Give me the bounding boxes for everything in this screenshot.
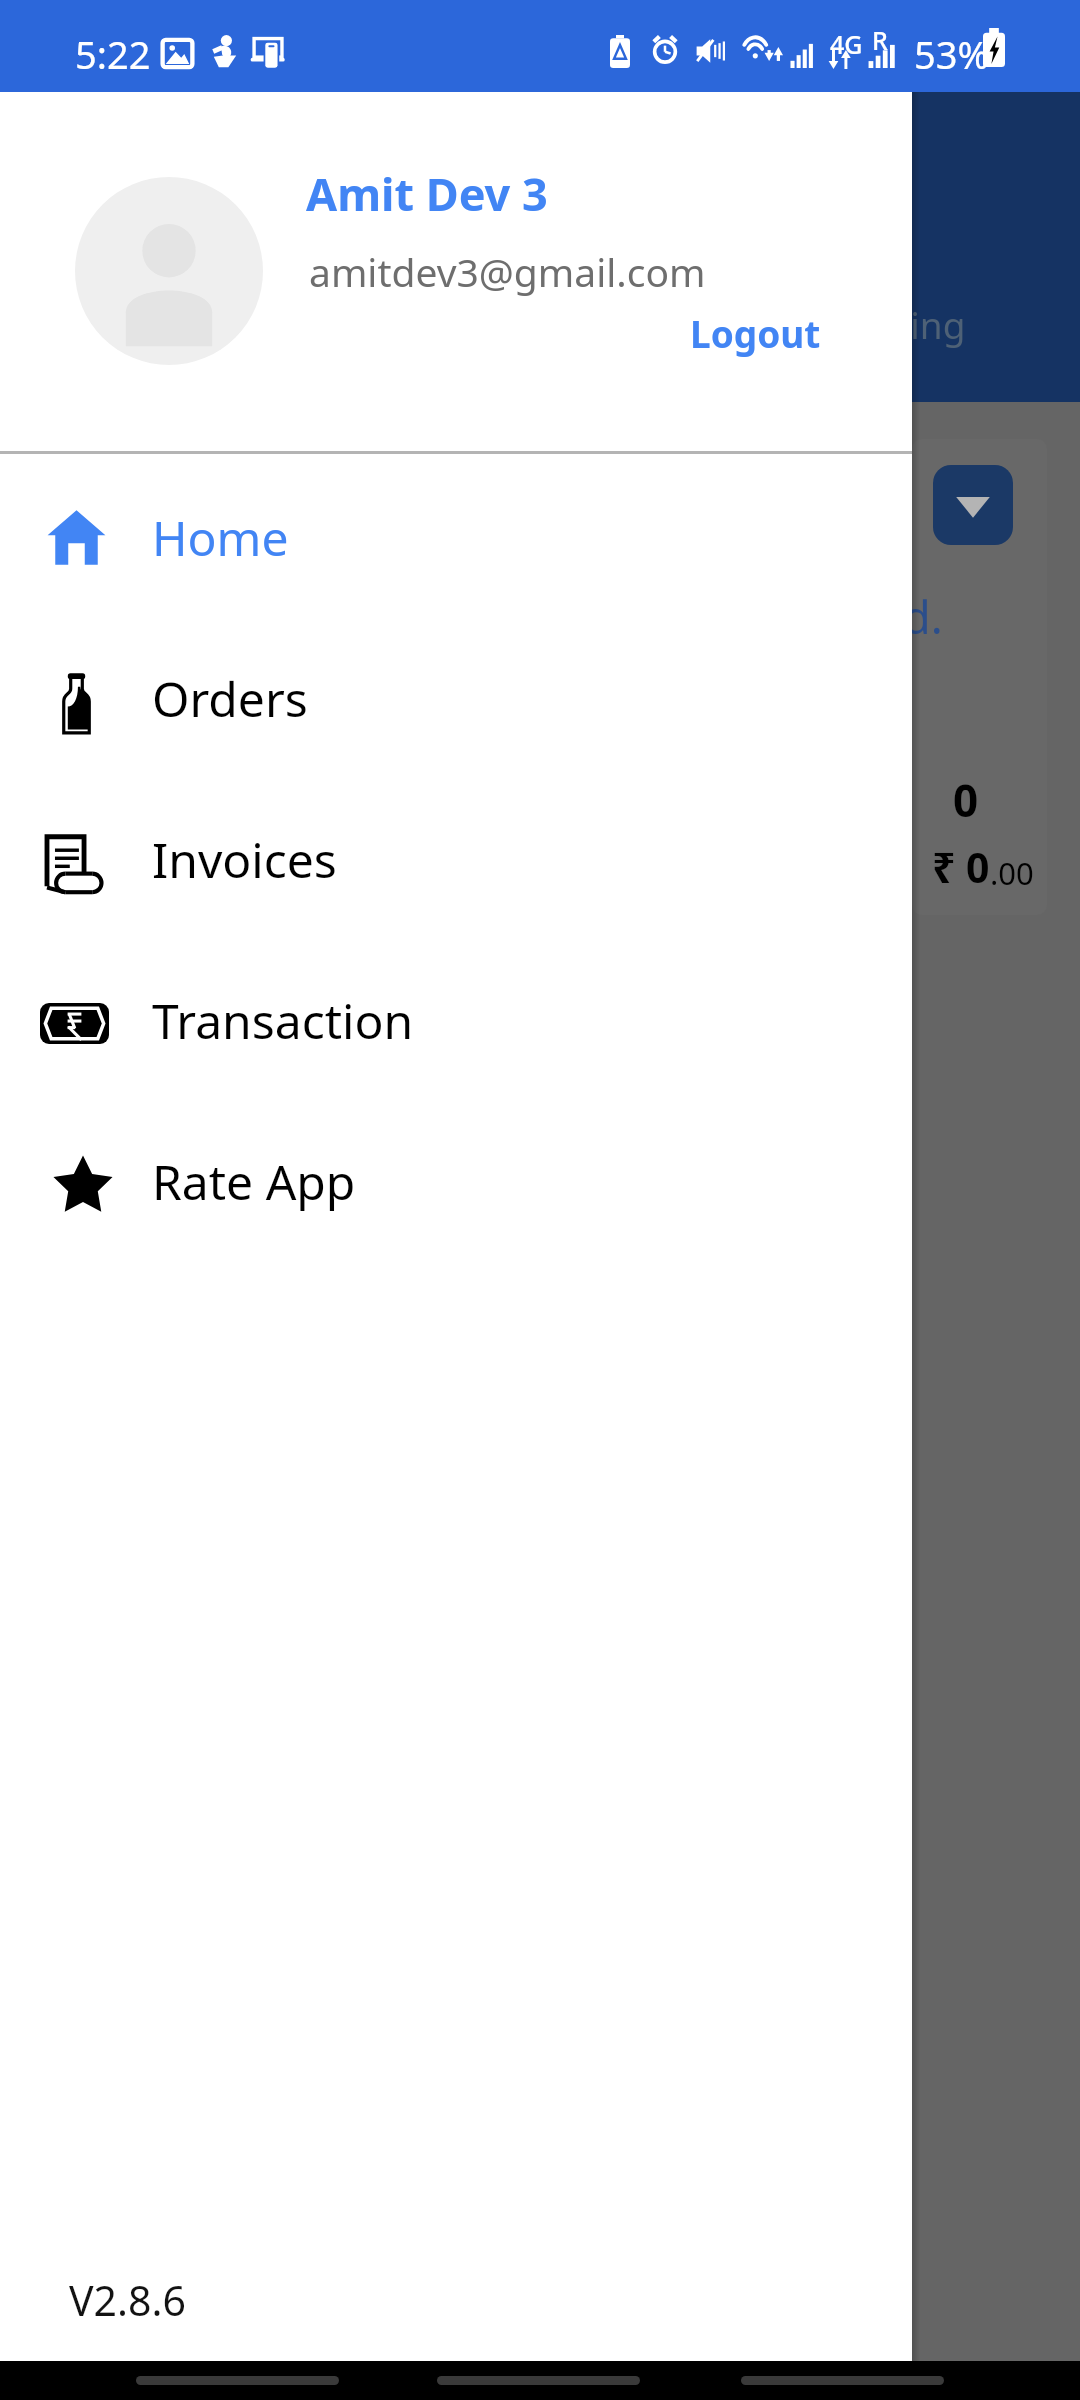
staticText: Logout <box>690 308 821 358</box>
button[interactable]: Home <box>0 457 912 618</box>
button[interactable]: Profile picture <box>75 177 263 365</box>
staticText: d. <box>912 586 943 647</box>
staticText: 0 <box>953 770 979 830</box>
staticText: Invoices <box>152 827 337 892</box>
button[interactable]: Rate App <box>0 1101 912 1262</box>
staticText: Rate App <box>152 1149 356 1214</box>
staticText: .00 <box>990 852 1034 894</box>
button[interactable]: Invoices <box>0 779 912 940</box>
staticText: ₹ 0 <box>932 839 990 895</box>
button[interactable]: Expand <box>933 465 1013 545</box>
staticText: Transaction <box>152 988 414 1053</box>
button[interactable]: Navigation <box>741 2376 944 2385</box>
staticText: Loading <box>825 299 966 349</box>
staticText: 4G <box>830 27 863 61</box>
button[interactable]: Navigation <box>136 2376 339 2385</box>
button[interactable]: Orders <box>0 618 912 779</box>
staticText: amitdev3@gmail.com <box>309 245 706 298</box>
staticText: 5:22 <box>75 28 151 80</box>
staticText: 53% <box>914 28 990 80</box>
staticText: Orders <box>152 666 308 731</box>
button[interactable]: Navigation <box>437 2376 640 2385</box>
button[interactable]: Logout <box>676 302 835 364</box>
staticText: Amit Dev 3 <box>306 163 548 224</box>
staticText: V2.8.6 <box>69 2272 186 2328</box>
button[interactable]: Transaction <box>0 940 912 1101</box>
staticText: R <box>872 23 888 57</box>
staticText: Home <box>152 505 289 570</box>
